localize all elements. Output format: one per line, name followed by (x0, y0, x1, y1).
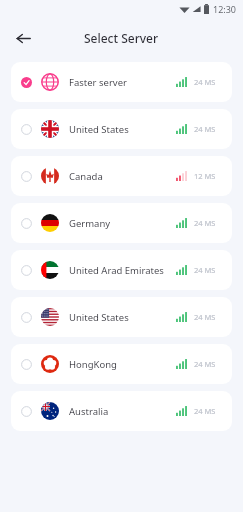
staticText: 24 MS (194, 77, 216, 87)
button[interactable]: Back (8, 23, 38, 53)
staticText: 24 MS (194, 265, 216, 275)
button[interactable]: United Arad Emirates (11, 250, 232, 290)
staticText: HongKong (69, 358, 117, 371)
button[interactable]: United States (11, 109, 232, 149)
staticText: United States (69, 123, 129, 136)
button[interactable]: Faster server (11, 62, 232, 102)
staticText: 24 MS (194, 406, 216, 416)
staticText: Faster server (69, 76, 127, 89)
button[interactable]: Canada (11, 156, 232, 196)
staticText: 24 MS (194, 218, 216, 228)
staticText: Australia (69, 405, 109, 418)
staticText: 24 MS (194, 359, 216, 369)
staticText: 24 MS (194, 312, 216, 322)
staticText: Canada (69, 170, 103, 183)
button[interactable]: Australia (11, 391, 232, 431)
button[interactable]: HongKong (11, 344, 232, 384)
staticText: 12 MS (194, 171, 216, 181)
staticText: 24 MS (194, 124, 216, 134)
button[interactable]: Germany (11, 203, 232, 243)
button[interactable]: United States (11, 297, 232, 337)
staticText: United States (69, 311, 129, 324)
staticText: Select Server (84, 30, 159, 46)
staticText: 12:30 (213, 3, 237, 15)
staticText: United Arad Emirates (69, 264, 164, 277)
staticText: Germany (69, 217, 111, 230)
